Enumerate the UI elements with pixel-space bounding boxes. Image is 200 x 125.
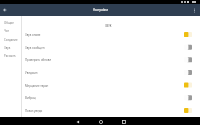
staticText: Звук сообщен xyxy=(25,46,184,50)
staticText: Настройки xyxy=(93,8,108,12)
staticText: Звук опове xyxy=(25,33,184,37)
button[interactable]: Звук сообщен xyxy=(22,41,200,54)
button[interactable]: Звук xyxy=(0,44,21,52)
button[interactable]: Проверять обновл xyxy=(22,53,200,66)
button[interactable] xyxy=(184,108,192,113)
staticText: Чат xyxy=(4,29,9,33)
staticText: Общие xyxy=(4,21,14,25)
button[interactable] xyxy=(184,32,192,37)
staticText: Показ уведо xyxy=(25,109,184,113)
button[interactable]: Создание xyxy=(0,35,21,43)
button[interactable] xyxy=(184,45,192,50)
button[interactable]: Чат xyxy=(0,27,21,35)
button[interactable] xyxy=(184,83,192,88)
button[interactable]: Navigate up xyxy=(1,6,9,14)
button[interactable]: Мерцание экран xyxy=(22,79,200,92)
staticText: Мерцание экран xyxy=(25,84,184,88)
button[interactable]: Back xyxy=(74,118,81,125)
staticText: ЗВУК xyxy=(105,24,112,28)
button[interactable]: Recent apps xyxy=(120,118,127,125)
button[interactable]: Уведомл xyxy=(22,66,200,79)
button[interactable]: Показ уведо xyxy=(22,104,200,117)
button[interactable] xyxy=(184,70,192,75)
staticText: Рассылк xyxy=(4,54,16,58)
staticText: Звук xyxy=(4,46,11,50)
button[interactable]: Рассылк xyxy=(0,52,21,60)
button[interactable]: Вибрац xyxy=(22,91,200,104)
staticText: Создание xyxy=(4,37,18,41)
staticText: Вибрац xyxy=(25,96,184,100)
staticText: Проверять обновл xyxy=(25,58,184,62)
button[interactable]: More options xyxy=(190,6,198,14)
button[interactable] xyxy=(184,57,192,62)
button[interactable]: Общие xyxy=(0,19,21,27)
staticText: Уведомл xyxy=(25,71,184,75)
button[interactable]: Звук опове xyxy=(22,28,200,41)
button[interactable]: Home xyxy=(97,118,104,125)
button[interactable] xyxy=(184,95,192,100)
